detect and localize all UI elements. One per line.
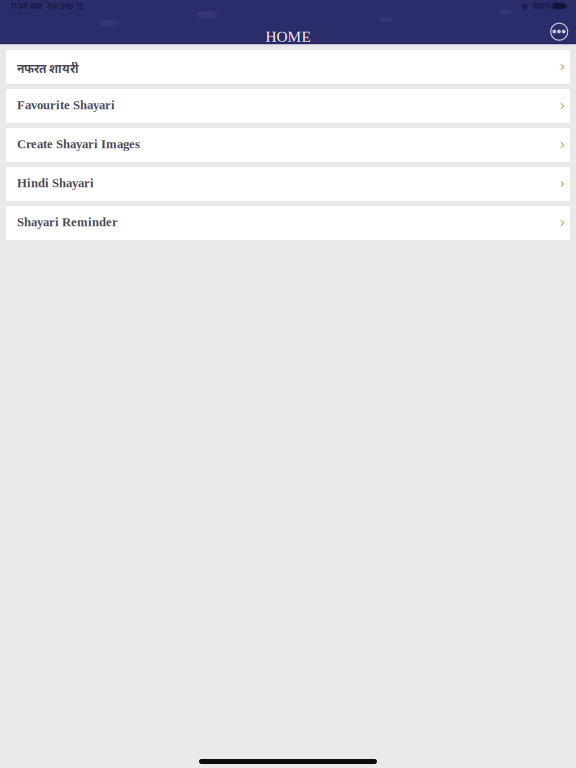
staticText: Shayari Reminder bbox=[17, 215, 118, 229]
staticText: नफरत शायरी bbox=[17, 62, 79, 78]
staticText: Hindi Shayari bbox=[17, 176, 94, 190]
staticText: Favourite Shayari bbox=[17, 98, 115, 112]
button[interactable]: Hindi Shayari bbox=[6, 167, 570, 201]
button[interactable]: Shayari Reminder bbox=[6, 206, 570, 240]
button[interactable]: Create Shayari Images bbox=[6, 128, 570, 162]
staticText: 100% bbox=[532, 2, 552, 10]
button[interactable]: नफरत शायरी bbox=[6, 50, 570, 84]
button[interactable]: More options bbox=[542, 18, 576, 44]
staticText: Create Shayari Images bbox=[17, 137, 140, 151]
staticText: 11:38 AM Tue Sep 12 bbox=[10, 2, 84, 10]
button[interactable]: Favourite Shayari bbox=[6, 89, 570, 123]
staticText: HOME bbox=[265, 28, 310, 45]
